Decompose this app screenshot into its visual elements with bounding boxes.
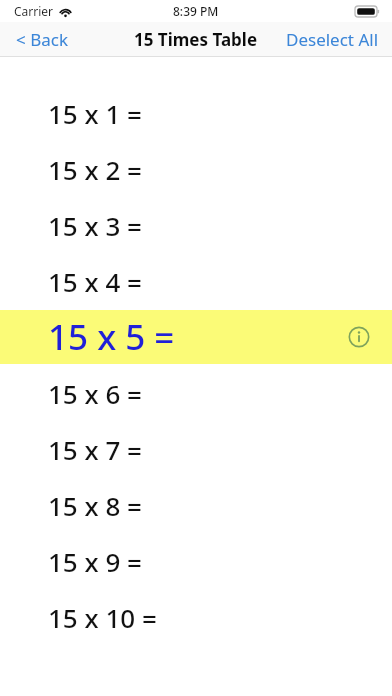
button[interactable]: 15 x 1 = — [0, 85, 392, 141]
button[interactable]: 15 x 9 = — [0, 533, 392, 589]
staticText: 15 x 10 = — [48, 600, 157, 635]
staticText: 15 x 7 = — [48, 432, 142, 467]
button[interactable]: 15 x 5 = — [0, 309, 392, 365]
button[interactable]: More information — [344, 322, 374, 352]
button[interactable]: 15 x 10 = — [0, 589, 392, 645]
button[interactable]: Deselect All — [272, 24, 392, 55]
staticText: 8:39 PM — [173, 3, 219, 19]
button[interactable]: 15 x 8 = — [0, 477, 392, 533]
button[interactable]: 15 x 2 = — [0, 141, 392, 197]
staticText: 15 x 2 = — [48, 152, 142, 187]
button[interactable]: 15 x 7 = — [0, 421, 392, 477]
staticText: Deselect All — [286, 28, 379, 51]
staticText: 15 x 9 = — [48, 544, 142, 579]
staticText: 15 x 8 = — [48, 488, 142, 523]
staticText: 15 Times Table — [134, 28, 258, 51]
staticText: 15 x 1 = — [48, 96, 142, 131]
staticText: 15 x 3 = — [48, 208, 142, 243]
staticText: 15 x 4 = — [48, 264, 142, 299]
button[interactable]: 15 x 6 = — [0, 365, 392, 421]
staticText: 15 x 5 = — [48, 313, 175, 361]
staticText: Carrier — [14, 3, 54, 19]
button[interactable]: 15 x 4 = — [0, 253, 392, 309]
button[interactable]: < Back — [0, 24, 82, 55]
staticText: 15 x 6 = — [48, 376, 142, 411]
staticText: < Back — [16, 28, 68, 51]
button[interactable]: 15 x 3 = — [0, 197, 392, 253]
